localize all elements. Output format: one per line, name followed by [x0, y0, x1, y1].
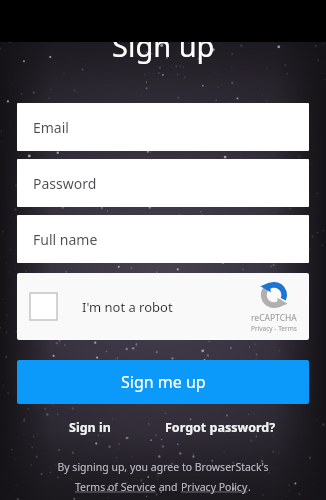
button[interactable]: I'm not a robot checkbox — [30, 293, 57, 320]
staticText: Sign in — [69, 419, 111, 436]
button[interactable]: Terms of Service — [75, 480, 156, 494]
button[interactable]: I'm not a robot checkbox — [17, 273, 309, 340]
staticText: Full name — [33, 230, 98, 249]
button[interactable]: Full name — [17, 215, 309, 263]
button[interactable]: Email — [17, 103, 309, 151]
staticText: I'm not a robot — [82, 298, 173, 316]
button[interactable]: Forgot password? — [161, 416, 280, 439]
staticText: and — [156, 480, 181, 494]
staticText: Privacy - Terms — [251, 324, 297, 333]
button[interactable]: Password — [17, 159, 309, 207]
staticText: Email — [33, 118, 69, 137]
button[interactable]: Privacy Policy — [181, 480, 248, 494]
staticText: Terms of Service — [75, 480, 156, 494]
staticText: Forgot password? — [165, 419, 276, 436]
button[interactable]: Sign me up — [17, 360, 309, 404]
staticText: Sign up — [112, 26, 215, 65]
button[interactable]: Sign in — [65, 416, 115, 439]
staticText: Sign me up — [121, 371, 206, 393]
staticText: By signing up, you agree to BrowserStack… — [57, 460, 269, 474]
staticText: Password — [33, 174, 97, 193]
staticText: reCAPTCHA — [251, 312, 297, 324]
staticText: Privacy Policy — [181, 480, 248, 494]
staticText: . — [248, 480, 251, 494]
